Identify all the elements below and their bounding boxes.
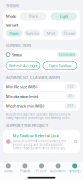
staticText: Sunrise bbox=[26, 30, 39, 36]
button[interactable]: Playback bbox=[17, 163, 33, 173]
staticText: Automation bbox=[50, 169, 66, 173]
button[interactable]: Open Toolbox bbox=[43, 62, 77, 70]
staticText: My Toolbox Referral Link bbox=[12, 133, 58, 138]
staticText: Settings bbox=[69, 169, 80, 173]
staticText: THEME bbox=[6, 3, 19, 8]
staticText: Min duration (min) bbox=[6, 94, 38, 99]
staticText: Dark bbox=[29, 14, 38, 19]
staticText: Refresh Account bbox=[9, 63, 37, 68]
staticText: Using this referral link helps keep the … bbox=[12, 139, 66, 150]
staticText: Library bbox=[4, 169, 12, 173]
staticText: Playback bbox=[20, 169, 30, 173]
button[interactable]: Settings bbox=[66, 163, 83, 173]
staticText: Open Toolbox bbox=[48, 63, 71, 68]
staticText: ⧉ bbox=[74, 140, 77, 143]
button[interactable]: Library bbox=[0, 163, 17, 173]
staticText: Light bbox=[60, 14, 68, 19]
staticText: Mint bbox=[47, 30, 55, 36]
button[interactable]: Ocean bbox=[61, 30, 77, 37]
staticText: Mode bbox=[6, 14, 16, 19]
button[interactable]: Sunrise bbox=[24, 30, 40, 37]
staticText: SUPPORT THE PROJECT bbox=[6, 123, 48, 128]
staticText: People bbox=[36, 169, 47, 173]
staticText: 250 bbox=[67, 104, 73, 108]
staticText: 150 bbox=[67, 85, 73, 88]
button[interactable]: Automation bbox=[50, 163, 66, 173]
button[interactable]: Refresh Account bbox=[6, 62, 40, 70]
button[interactable]: People bbox=[33, 163, 50, 173]
staticText: Ocean bbox=[63, 30, 74, 36]
button[interactable]: Light bbox=[50, 12, 77, 20]
button[interactable]: Dark bbox=[20, 12, 46, 20]
staticText: Mesh track min (MB) bbox=[6, 103, 44, 109]
staticText: Paper bbox=[9, 30, 19, 36]
staticText: CONNECTION bbox=[6, 43, 31, 48]
staticText: Variant bbox=[6, 22, 18, 28]
staticText: 45 bbox=[68, 95, 72, 98]
button[interactable]: Mint bbox=[42, 30, 59, 37]
staticText: Min file size (MB) bbox=[6, 84, 37, 89]
staticText: Autodetect scans and uploads. Applies on… bbox=[6, 113, 71, 120]
staticText: Connected bbox=[59, 53, 75, 56]
button[interactable]: Paper bbox=[6, 30, 22, 37]
staticText: ADVANCED CLASSIFICATION bbox=[6, 75, 60, 80]
staticText: Status bbox=[12, 52, 22, 57]
